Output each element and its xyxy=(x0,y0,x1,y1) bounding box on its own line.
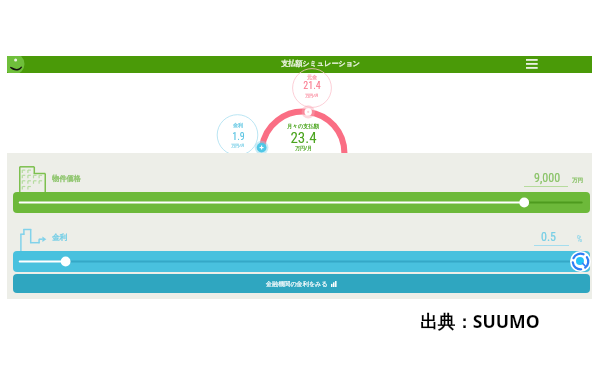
staticText: 23.4 xyxy=(290,129,317,147)
staticText: 0.5 xyxy=(541,230,557,244)
staticText: 万円/月 xyxy=(231,143,245,148)
staticText: 万円 xyxy=(572,177,583,184)
staticText: 万円/月 xyxy=(295,145,312,152)
staticText: % xyxy=(577,234,583,244)
staticText: 元金 xyxy=(307,74,317,80)
staticText: 万円/月 xyxy=(305,93,319,98)
staticText: 物件価格 xyxy=(52,174,81,183)
staticText: 9,000 xyxy=(534,171,561,185)
button[interactable]: 金融機関の金利をみる xyxy=(13,274,590,293)
staticText: 21.4 xyxy=(303,80,321,92)
staticText: 1.9 xyxy=(232,131,245,143)
staticText: 出典：SUUMO xyxy=(420,309,540,333)
button[interactable]: 支払額シミュレーション xyxy=(7,56,592,73)
button[interactable]: Search interest rates xyxy=(570,251,591,272)
button[interactable]: Menu xyxy=(519,56,539,73)
staticText: 金融機関の金利をみる xyxy=(266,280,328,288)
button[interactable] xyxy=(13,192,590,213)
staticText: 支払額シミュレーション xyxy=(281,59,360,68)
button[interactable] xyxy=(13,251,590,272)
staticText: 金利 xyxy=(52,233,68,243)
staticText: 月々の支払額 xyxy=(287,123,319,130)
staticText: 金利 xyxy=(233,122,243,128)
